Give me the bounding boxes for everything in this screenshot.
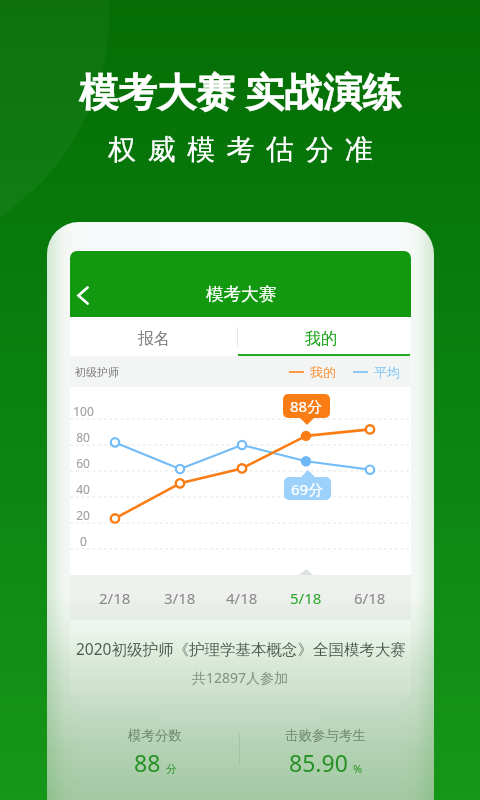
staticText: 2/18 bbox=[99, 588, 131, 608]
staticText: 平均 bbox=[374, 364, 400, 380]
staticText: 0 bbox=[80, 533, 87, 549]
staticText: 20 bbox=[76, 507, 90, 523]
staticText: 100 bbox=[73, 403, 94, 419]
staticText: 4/18 bbox=[226, 588, 258, 608]
staticText: 模考大赛 实战演练 bbox=[79, 64, 402, 117]
staticText: 初级护师 bbox=[75, 365, 119, 379]
button[interactable]: 报名 bbox=[70, 317, 237, 356]
staticText: 模考分数 bbox=[128, 727, 182, 744]
staticText: 我的 bbox=[305, 329, 337, 349]
staticText: 共12897人参加 bbox=[192, 668, 289, 687]
staticText: 报名 bbox=[138, 329, 170, 349]
staticText: 80 bbox=[76, 429, 90, 445]
staticText: 权威模考估分准 bbox=[108, 132, 385, 167]
staticText: 击败参与考生 bbox=[285, 727, 366, 744]
staticText: 6/18 bbox=[354, 588, 386, 608]
staticText: 2020初级护师《护理学基本概念》全国模考大赛 bbox=[76, 638, 406, 659]
staticText: 88 bbox=[134, 747, 161, 778]
button[interactable]: 我的 bbox=[237, 317, 410, 356]
staticText: 69分 bbox=[291, 479, 324, 499]
staticText: 40 bbox=[76, 481, 90, 497]
button[interactable]: Back bbox=[70, 275, 103, 315]
staticText: 5/18 bbox=[290, 588, 322, 608]
staticText: % bbox=[353, 761, 363, 776]
staticText: 60 bbox=[76, 455, 90, 471]
staticText: 3/18 bbox=[164, 588, 196, 608]
staticText: 我的 bbox=[310, 364, 336, 380]
staticText: 分 bbox=[166, 762, 177, 776]
staticText: 88分 bbox=[290, 396, 323, 416]
staticText: 模考大赛 bbox=[206, 283, 276, 305]
staticText: 85.90 bbox=[289, 747, 348, 778]
